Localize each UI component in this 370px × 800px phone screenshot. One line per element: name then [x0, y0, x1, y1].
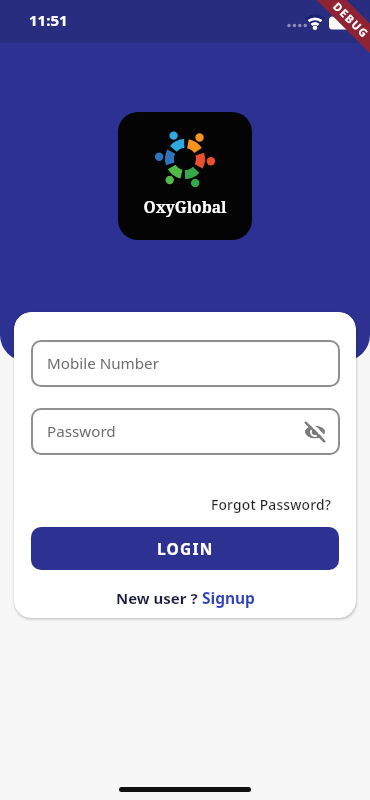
staticText: LOGIN — [157, 538, 214, 559]
staticText: DEBUG — [330, 0, 370, 41]
button[interactable]: Password — [31, 408, 340, 455]
staticText: New user ? — [116, 588, 202, 608]
staticText: Mobile Number — [47, 353, 159, 374]
button[interactable]: LOGIN — [31, 527, 339, 570]
button[interactable]: New user ? — [116, 587, 255, 608]
staticText: Password — [47, 421, 116, 442]
button[interactable]: Forgot Password? — [211, 495, 332, 514]
staticText: OxyGlobal — [118, 196, 252, 217]
staticText: Signup — [202, 587, 255, 608]
staticText: 11:51 — [29, 10, 68, 30]
button[interactable]: Mobile Number — [31, 340, 340, 387]
button[interactable] — [302, 419, 328, 445]
